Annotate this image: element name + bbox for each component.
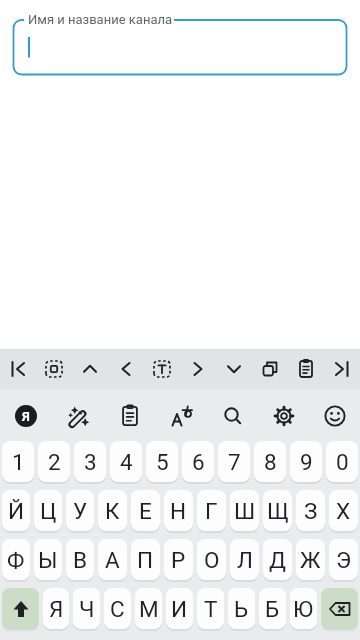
- button[interactable]: Щ: [263, 490, 292, 531]
- button[interactable]: [207, 389, 258, 437]
- button[interactable]: [324, 349, 360, 389]
- button[interactable]: А: [98, 539, 127, 580]
- button[interactable]: Я: [43, 588, 69, 629]
- button[interactable]: Л: [230, 539, 259, 580]
- button[interactable]: У: [66, 490, 94, 531]
- button[interactable]: [0, 0, 360, 349]
- staticText: Й: [8, 498, 25, 524]
- staticText: Я: [22, 409, 30, 424]
- staticText: М: [139, 596, 159, 622]
- button[interactable]: Ч: [73, 588, 100, 629]
- staticText: 8: [264, 449, 277, 475]
- staticText: Я: [49, 596, 64, 622]
- button[interactable]: [108, 349, 144, 389]
- button[interactable]: Ы: [34, 539, 62, 580]
- button[interactable]: 1: [2, 441, 34, 482]
- staticText: 9: [300, 449, 313, 475]
- button[interactable]: [216, 349, 252, 389]
- button[interactable]: 7: [218, 441, 250, 482]
- button[interactable]: [144, 349, 180, 389]
- button[interactable]: Б: [259, 588, 286, 629]
- staticText: С: [110, 596, 125, 622]
- staticText: Б: [265, 596, 280, 622]
- button[interactable]: Э: [329, 539, 358, 580]
- staticText: Ь: [234, 596, 249, 622]
- button[interactable]: 9: [290, 441, 322, 482]
- button[interactable]: 6: [182, 441, 214, 482]
- button[interactable]: 5: [146, 441, 178, 482]
- button[interactable]: [258, 389, 309, 437]
- staticText: 5: [156, 449, 169, 475]
- button[interactable]: [252, 349, 288, 389]
- button[interactable]: Ж: [296, 539, 325, 580]
- button[interactable]: Й: [2, 490, 30, 531]
- button[interactable]: Д: [263, 539, 292, 580]
- button[interactable]: 8: [254, 441, 286, 482]
- staticText: З: [304, 498, 318, 524]
- button[interactable]: [0, 349, 36, 389]
- staticText: 4: [120, 449, 133, 475]
- button[interactable]: П: [131, 539, 160, 580]
- button[interactable]: [104, 389, 156, 437]
- button[interactable]: О: [197, 539, 226, 580]
- staticText: О: [204, 547, 220, 573]
- button[interactable]: К: [98, 490, 127, 531]
- button[interactable]: [2, 588, 39, 629]
- staticText: Л: [237, 547, 253, 573]
- staticText: Д: [269, 547, 286, 573]
- staticText: Ч: [79, 596, 95, 622]
- button[interactable]: Я: [0, 389, 52, 437]
- button[interactable]: Ф: [2, 539, 30, 580]
- button[interactable]: И: [166, 588, 193, 629]
- button[interactable]: З: [296, 490, 325, 531]
- button[interactable]: Ю: [290, 588, 317, 629]
- button[interactable]: 0: [326, 441, 358, 482]
- staticText: А: [105, 547, 120, 573]
- staticText: В: [73, 547, 88, 573]
- button[interactable]: Т: [197, 588, 224, 629]
- button[interactable]: [321, 588, 358, 629]
- staticText: Ю: [293, 596, 314, 622]
- staticText: Г: [205, 498, 218, 524]
- button[interactable]: Г: [197, 490, 226, 531]
- staticText: Имя и название канала: [28, 12, 173, 27]
- button[interactable]: [288, 349, 324, 389]
- button[interactable]: [309, 389, 360, 437]
- staticText: 3: [84, 449, 97, 475]
- staticText: 2: [48, 449, 61, 475]
- button[interactable]: 2: [38, 441, 70, 482]
- button[interactable]: 4: [110, 441, 142, 482]
- button[interactable]: [156, 389, 207, 437]
- button[interactable]: [52, 389, 104, 437]
- button[interactable]: Н: [164, 490, 193, 531]
- staticText: 1: [12, 449, 25, 475]
- staticText: Н: [170, 498, 187, 524]
- staticText: П: [137, 547, 154, 573]
- staticText: Т: [204, 596, 218, 622]
- staticText: 7: [228, 449, 241, 475]
- staticText: Ш: [234, 498, 256, 524]
- staticText: Щ: [267, 498, 289, 524]
- staticText: Э: [336, 547, 352, 573]
- staticText: Ф: [7, 547, 25, 573]
- button[interactable]: Х: [329, 490, 358, 531]
- staticText: Ж: [300, 547, 321, 573]
- button[interactable]: [180, 349, 216, 389]
- staticText: Ц: [40, 498, 57, 524]
- staticText: 6: [192, 449, 205, 475]
- button[interactable]: Ц: [34, 490, 62, 531]
- staticText: Х: [336, 498, 351, 524]
- button[interactable]: [36, 349, 72, 389]
- button[interactable]: [72, 349, 108, 389]
- button[interactable]: Ь: [228, 588, 255, 629]
- button[interactable]: Ш: [230, 490, 259, 531]
- button[interactable]: В: [66, 539, 94, 580]
- staticText: И: [171, 596, 188, 622]
- button[interactable]: М: [135, 588, 162, 629]
- staticText: К: [105, 498, 120, 524]
- button[interactable]: Р: [164, 539, 193, 580]
- staticText: 0: [336, 449, 349, 475]
- button[interactable]: Е: [131, 490, 160, 531]
- button[interactable]: С: [104, 588, 131, 629]
- button[interactable]: 3: [74, 441, 106, 482]
